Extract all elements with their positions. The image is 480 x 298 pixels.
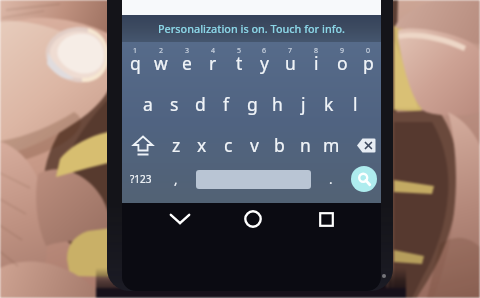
button[interactable]: x [189,127,215,163]
button[interactable]: . [319,165,343,193]
staticText: ?123 [130,172,152,186]
staticText: u [285,51,296,75]
button[interactable]: n [292,127,318,163]
staticText: r [209,51,217,75]
staticText: , [174,170,178,188]
button[interactable]: q [122,45,148,81]
button[interactable]: d [187,86,213,122]
staticText: v [250,133,259,157]
button[interactable]: t [226,45,252,81]
button[interactable]: z [163,127,189,163]
button[interactable]: s [161,86,187,122]
button[interactable]: m [318,127,344,163]
staticText: 6 [262,46,267,56]
button[interactable]: ?123 [123,164,159,194]
staticText: n [300,133,311,157]
staticText: p [363,51,374,75]
button[interactable]: f [213,86,239,122]
staticText: j [301,92,306,116]
staticText: d [195,92,206,116]
staticText: 7 [288,46,293,56]
staticText: f [223,92,230,116]
staticText: . [329,170,333,188]
button[interactable]: Recents [308,201,344,237]
button[interactable]: w [148,45,174,81]
button[interactable]: o [329,45,355,81]
staticText: 1 [133,46,138,56]
staticText: 5 [237,46,242,56]
button[interactable]: Space [196,170,311,189]
staticText: k [324,92,334,116]
staticText: q [130,51,141,75]
button[interactable]: j [290,86,316,122]
button[interactable]: h [264,86,290,122]
staticText: w [154,51,168,75]
staticText: l [353,92,358,116]
staticText: y [260,51,269,75]
button[interactable]: Back [162,203,198,235]
staticText: 8 [314,46,319,56]
staticText: e [182,51,192,75]
staticText: b [274,133,285,157]
button[interactable]: y [251,45,277,81]
button[interactable]: r [200,45,226,81]
staticText: i [314,51,319,75]
button[interactable]: b [266,127,292,163]
button[interactable]: c [215,127,241,163]
button[interactable]: Personalization is on. Touch for info. [122,15,381,42]
button[interactable]: p [355,45,381,81]
button[interactable]: i [303,45,329,81]
staticText: t [236,51,243,75]
button[interactable]: a [135,86,161,122]
button[interactable]: u [277,45,303,81]
button[interactable]: l [342,86,368,122]
button[interactable]: Shift [127,129,159,161]
button[interactable]: , [164,165,188,193]
staticText: 3 [185,46,190,56]
staticText: m [323,133,340,157]
staticText: g [247,92,258,116]
button[interactable]: Search [351,166,377,192]
staticText: z [172,133,181,157]
staticText: o [337,51,348,75]
button[interactable]: Home [235,201,271,237]
button[interactable]: k [316,86,342,122]
button[interactable]: g [239,86,265,122]
staticText: c [224,133,233,157]
staticText: 4 [211,46,216,56]
staticText: 2 [159,46,164,56]
button[interactable]: v [241,127,267,163]
staticText: 0 [366,46,371,56]
staticText: Personalization is on. Touch for info. [158,21,346,36]
staticText: a [143,92,153,116]
staticText: 9 [340,46,345,56]
staticText: s [170,92,179,116]
staticText: h [272,92,283,116]
button[interactable]: Backspace [348,131,381,159]
staticText: x [197,133,207,157]
button[interactable]: e [174,45,200,81]
